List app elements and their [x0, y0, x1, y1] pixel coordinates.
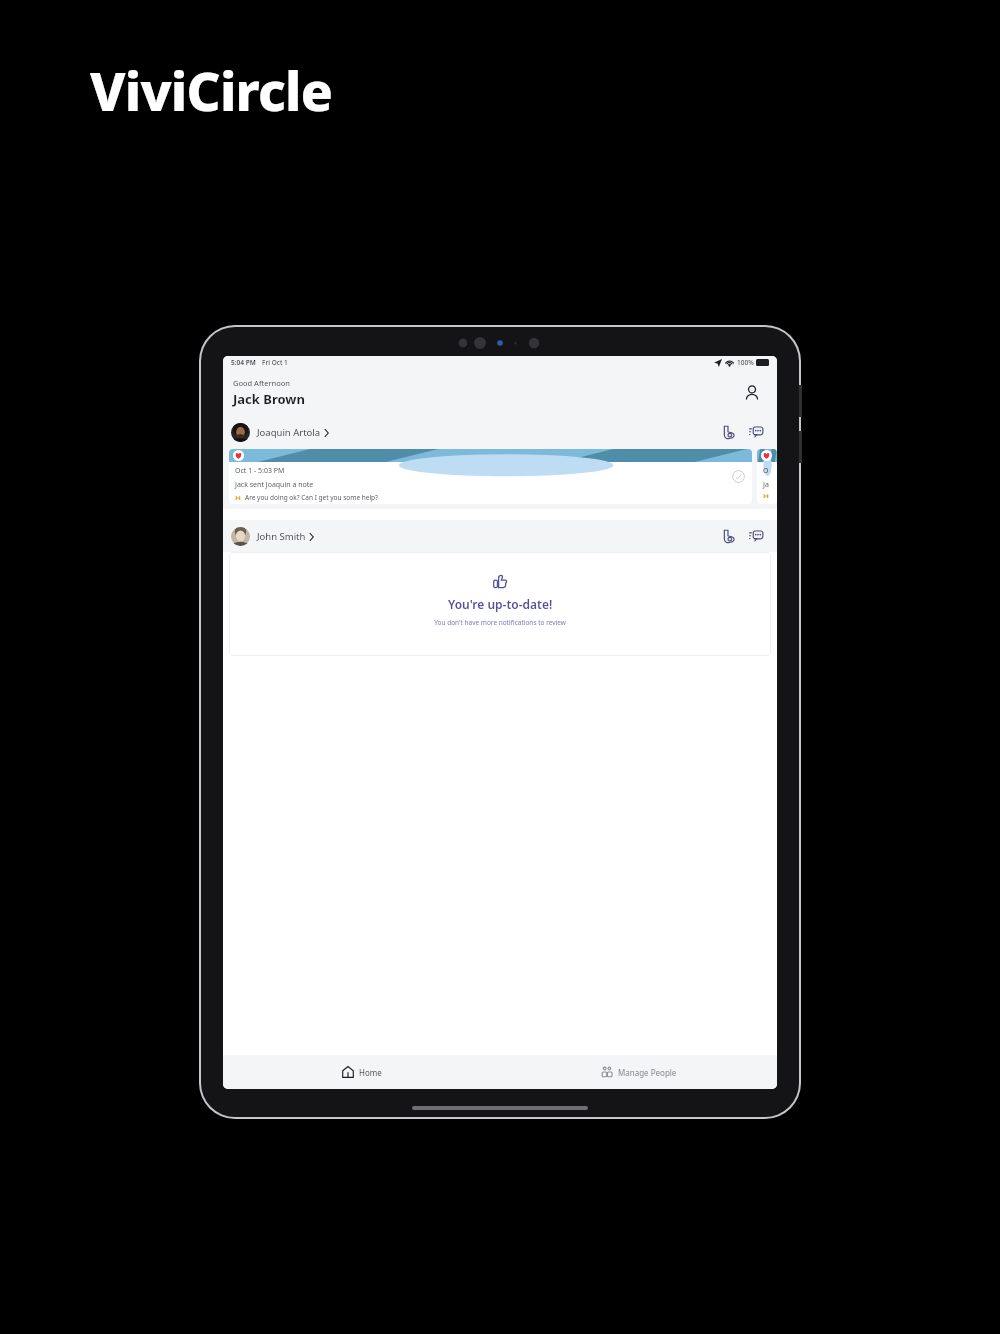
staticText: Joaquin Artola — [257, 426, 321, 439]
staticText: 5:04 PM — [231, 358, 256, 367]
staticText: Oct 1 - 5:03 PM — [235, 466, 285, 476]
button[interactable]: Oct 1 - 5:03 PM — [229, 449, 752, 504]
button[interactable]: Home — [223, 1055, 500, 1089]
staticText: Jac — [763, 480, 771, 490]
staticText: Manage People — [618, 1067, 677, 1078]
button[interactable]: Send a nudge — [717, 421, 739, 443]
button[interactable]: Send a message — [745, 421, 767, 443]
staticText: John Smith — [257, 530, 306, 543]
staticText: You don't have more notifications to rev… — [434, 618, 566, 627]
button[interactable]: Manage People — [500, 1055, 777, 1089]
staticText: 100% — [737, 358, 754, 367]
button[interactable]: Mark as reviewed — [732, 470, 745, 483]
button[interactable]: Oct — [757, 449, 777, 504]
staticText: You're up-to-date! — [448, 596, 553, 612]
button[interactable]: Send a nudge — [717, 525, 739, 547]
staticText: Oct — [763, 466, 771, 476]
staticText: Are you doing ok? Can I get you some hel… — [245, 493, 378, 502]
button[interactable]: John Smith — [231, 527, 314, 546]
button[interactable]: Joaquin Artola — [231, 423, 329, 442]
staticText: Jack Brown — [233, 390, 305, 408]
staticText: Fri Oct 1 — [262, 358, 288, 367]
button[interactable]: Send a message — [745, 525, 767, 547]
staticText: ViviCircle — [90, 54, 333, 126]
staticText: Jack sent Joaquin a note — [235, 480, 314, 490]
button[interactable]: Profile — [739, 380, 765, 406]
staticText: Home — [359, 1067, 382, 1078]
staticText: Good Afternoon — [233, 378, 290, 388]
